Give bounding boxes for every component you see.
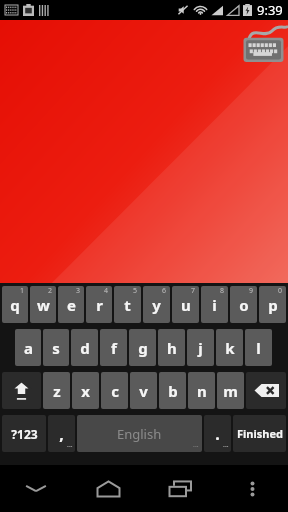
staticText: e [67,295,76,315]
staticText: c [111,381,119,401]
staticText: v [139,381,148,401]
button[interactable]: s [43,329,69,366]
staticText: ··· [193,442,199,452]
staticText: 1 [20,286,25,296]
button[interactable]: y [143,286,170,323]
staticText: 9:39 [257,1,283,19]
button[interactable]: h [158,329,185,366]
button[interactable]: Recent apps [144,465,216,512]
staticText: m [223,381,238,401]
staticText: i [212,295,217,315]
button[interactable]: f [100,329,127,366]
button[interactable]: o [230,286,257,323]
staticText: 5 [133,286,138,296]
staticText: h [167,338,177,358]
button[interactable]: a [15,329,41,366]
staticText: u [181,295,191,315]
staticText: English [117,425,162,443]
button[interactable]: x [72,372,99,409]
staticText: , [59,423,64,445]
button[interactable]: z [43,372,70,409]
button[interactable]: u [172,286,199,323]
staticText: 7 [191,286,196,296]
staticText: b [168,381,178,401]
staticText: y [152,295,161,315]
staticText: Finished [237,426,283,441]
button[interactable]: ?123 [2,415,46,452]
button[interactable]: Shift [2,372,41,409]
button[interactable]: k [216,329,243,366]
staticText: t [124,295,131,315]
staticText: g [138,338,148,358]
staticText: w [37,295,50,315]
staticText: 6 [162,286,167,296]
button[interactable]: w [30,286,56,323]
staticText: 4 [104,286,109,296]
staticText: k [225,338,235,358]
button[interactable]: r [86,286,112,323]
staticText: ··· [67,442,73,452]
button[interactable]: Backspace [246,372,286,409]
button[interactable]: Finished [233,415,286,452]
staticText: f [111,338,117,358]
button[interactable]: b [159,372,186,409]
button[interactable]: q [2,286,28,323]
button[interactable]: t [114,286,141,323]
button[interactable]: d [71,329,98,366]
staticText: 2 [48,286,53,296]
staticText: ?123 [11,426,38,442]
button[interactable]: n [188,372,215,409]
staticText: d [80,338,90,358]
button[interactable]: Hide keyboard [0,465,72,512]
button[interactable]: g [129,329,156,366]
staticText: 9 [249,286,254,296]
staticText: o [239,295,249,315]
button[interactable]: e [58,286,84,323]
staticText: p [268,295,278,315]
staticText: q [10,295,20,315]
staticText: n [197,381,207,401]
staticText: l [256,338,261,358]
staticText: j [198,338,203,358]
button[interactable]: Home [72,465,144,512]
button[interactable]: j [187,329,214,366]
button[interactable]: , [48,415,75,452]
button[interactable]: Space [77,415,202,452]
button[interactable]: m [217,372,244,409]
button[interactable]: More options [216,465,288,512]
button[interactable]: i [201,286,228,323]
button[interactable]: v [130,372,157,409]
button[interactable]: . [204,415,231,452]
staticText: . [215,423,220,445]
button[interactable]: l [245,329,272,366]
staticText: a [24,338,33,358]
staticText: ··· [223,442,229,452]
staticText: s [52,338,60,358]
button[interactable]: c [101,372,128,409]
button[interactable]: p [259,286,286,323]
staticText: 8 [220,286,225,296]
staticText: r [96,295,103,315]
staticText: z [53,381,61,401]
button[interactable]: Choose input method [237,26,287,68]
staticText: 3 [76,286,81,296]
staticText: 0 [278,286,283,296]
staticText: x [81,381,90,401]
